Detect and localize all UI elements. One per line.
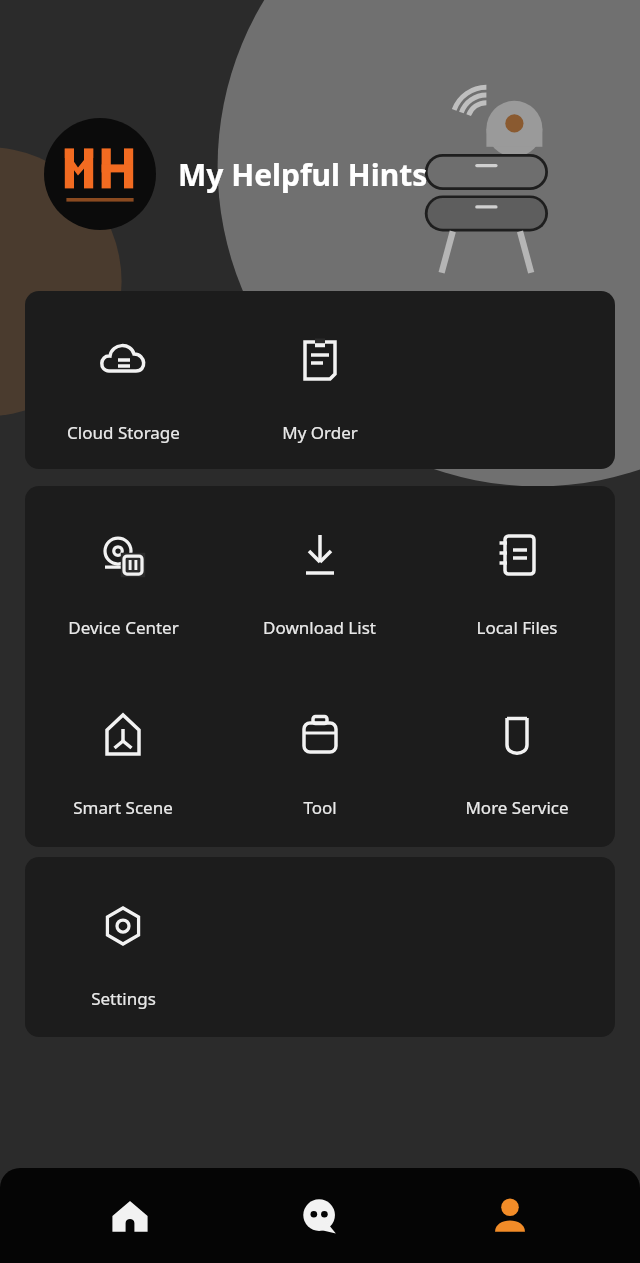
button[interactable]: More Service (418, 666, 615, 819)
button[interactable]: Messages (260, 1168, 380, 1263)
button[interactable]: Tool (221, 666, 418, 819)
button[interactable]: Smart Scene (25, 666, 221, 819)
button[interactable]: Local Files (418, 486, 615, 639)
button[interactable]: Download List (221, 486, 418, 639)
staticText: My Order (282, 421, 358, 444)
staticText: Tool (303, 796, 337, 819)
staticText: Download List (263, 616, 376, 639)
staticText: Cloud Storage (67, 421, 180, 444)
button[interactable]: Home (70, 1168, 190, 1263)
button[interactable]: Settings (25, 857, 221, 1010)
button[interactable]: Profile (450, 1168, 570, 1263)
staticText: Smart Scene (73, 796, 173, 819)
staticText: Device Center (68, 616, 179, 639)
staticText: More Service (465, 796, 569, 819)
button[interactable]: Device Center (25, 486, 221, 639)
staticText: My Helpful Hints (178, 154, 428, 195)
staticText: Local Files (476, 616, 558, 639)
staticText: Settings (91, 987, 156, 1010)
button[interactable]: Cloud Storage (25, 291, 221, 444)
button[interactable]: My Order (221, 291, 418, 444)
